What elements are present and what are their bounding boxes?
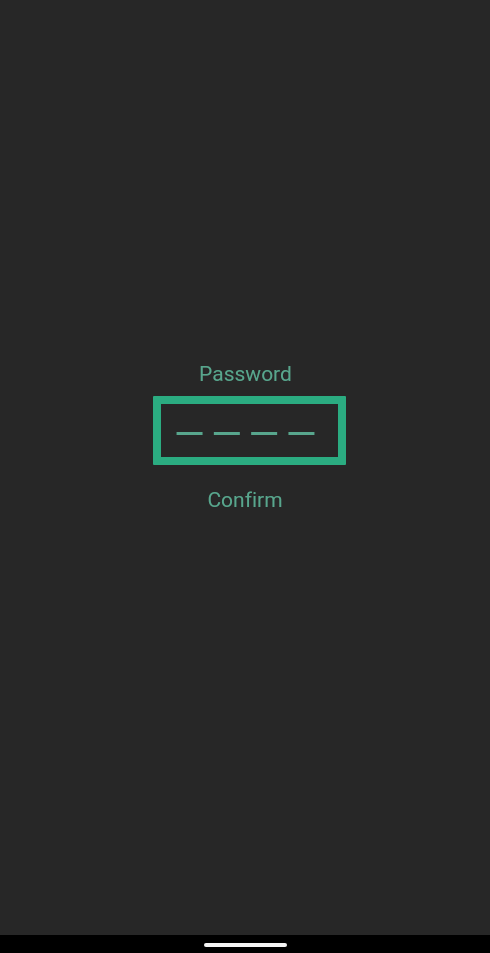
button[interactable]: Conf‌irm [207, 488, 283, 513]
staticText: Conf‌irm [207, 488, 283, 513]
button[interactable]: Password field [153, 396, 346, 465]
staticText: Password [199, 362, 292, 387]
